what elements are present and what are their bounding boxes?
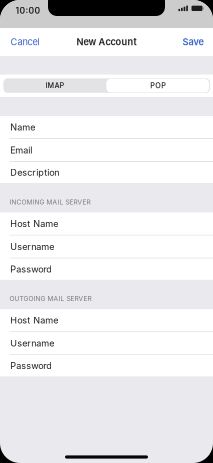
- staticText: OUTGOING MAIL SERVER: [9, 295, 91, 302]
- staticText: Name: [10, 122, 35, 133]
- button[interactable]: Save: [163, 28, 213, 56]
- staticText: Description: [10, 167, 59, 178]
- staticText: Cancel: [10, 36, 39, 47]
- button[interactable]: Host Name: [0, 213, 213, 235]
- staticText: New Account: [76, 36, 136, 47]
- button[interactable]: Host Name: [0, 309, 213, 331]
- button[interactable]: Cancel: [0, 28, 56, 56]
- button[interactable]: IMAP: [3, 78, 107, 93]
- staticText: POP: [150, 81, 166, 90]
- button[interactable]: Email: [0, 139, 213, 161]
- staticText: Username: [10, 338, 54, 349]
- staticText: Host Name: [10, 218, 58, 229]
- staticText: IMAP: [45, 81, 64, 90]
- staticText: Host Name: [10, 315, 58, 326]
- staticText: Email: [10, 145, 32, 156]
- staticText: 10:00: [15, 5, 40, 16]
- button[interactable]: Username: [0, 332, 213, 354]
- staticText: Password: [10, 264, 52, 275]
- button[interactable]: Password: [0, 355, 213, 376]
- staticText: Save: [183, 36, 204, 47]
- button[interactable]: Name: [0, 116, 213, 138]
- button[interactable]: Description: [0, 162, 213, 183]
- button[interactable]: Username: [0, 236, 213, 258]
- staticText: Username: [10, 241, 54, 252]
- staticText: INCOMING MAIL SERVER: [9, 198, 90, 206]
- staticText: Password: [10, 360, 52, 371]
- button[interactable]: Password: [0, 259, 213, 280]
- button[interactable]: POP: [107, 78, 210, 93]
